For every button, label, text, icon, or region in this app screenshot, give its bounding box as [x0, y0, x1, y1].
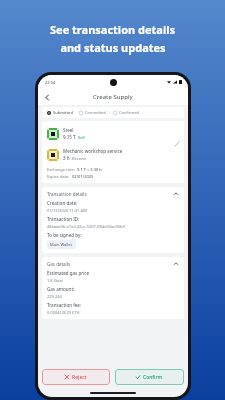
staticText: Confirmed	[119, 110, 139, 115]
staticText: Transaction fee:	[47, 302, 82, 308]
staticText: 9.1 T = 3.30 h	[77, 167, 102, 172]
staticText: See transaction details	[50, 22, 175, 37]
staticText: Gas details	[47, 261, 71, 267]
staticText: ·	[73, 110, 79, 115]
button[interactable]: Steel	[47, 125, 179, 142]
staticText: Create Supply	[93, 93, 133, 101]
staticText: Reject	[72, 374, 87, 381]
button[interactable]: Main Wallet	[47, 240, 76, 249]
staticText: 22:54	[45, 80, 56, 85]
button[interactable]: Mechanic workshop service	[47, 146, 179, 163]
staticText: Estimated gas price	[47, 270, 90, 276]
staticText: Gas amount:	[47, 286, 75, 292]
other: Collapse	[173, 261, 179, 267]
staticText: ·	[107, 110, 113, 115]
staticText: 3 h	[63, 155, 70, 161]
staticText: Expire date:	[47, 174, 70, 179]
button[interactable]: Confirm	[115, 369, 184, 385]
staticText: 1.8 Gwei	[47, 278, 64, 283]
staticText: Receive	[72, 156, 87, 161]
staticText: Exchange rate:	[47, 167, 75, 172]
staticText: Main Wallet	[50, 242, 73, 247]
staticText: Committed	[85, 110, 107, 115]
button[interactable]: Back	[42, 92, 52, 102]
staticText: 48aaae0b-e1a3-42cc-5207-08de53ae95b9	[47, 224, 125, 229]
staticText: To be signed by:	[47, 232, 82, 238]
staticText: 229,244	[47, 294, 62, 299]
staticText: 9.15 T	[63, 134, 76, 140]
staticText: Submitted	[53, 110, 73, 115]
staticText: 01/13/2025 11:31 AM	[47, 208, 87, 213]
staticText: 0.000412629 ETH	[47, 310, 80, 315]
staticText: Mechanic workshop service	[63, 148, 123, 154]
button[interactable]: Gas details	[47, 261, 179, 267]
staticText: 02/01/2025	[72, 174, 94, 179]
staticText: Creation date:	[47, 200, 78, 206]
other: Collapse	[173, 191, 179, 197]
staticText: Steel	[63, 127, 74, 133]
button[interactable]: Reject	[42, 369, 110, 385]
staticText: and status updates	[60, 40, 166, 55]
button[interactable]: Transaction details	[47, 191, 179, 197]
staticText: Sell	[78, 135, 85, 140]
staticText: Confirm	[143, 374, 163, 381]
staticText: Transaction ID:	[47, 216, 80, 222]
staticText: Transaction details	[47, 191, 87, 197]
